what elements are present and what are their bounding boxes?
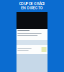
staticText: EN DIRECTO (21, 6, 43, 10)
staticText: COUP DE GRÂCE (19, 2, 45, 6)
